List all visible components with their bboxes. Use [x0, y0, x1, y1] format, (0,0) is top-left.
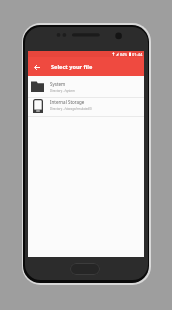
button[interactable]: [28, 97, 144, 116]
staticText: Select your file: [51, 63, 93, 71]
staticText: Directory - /storage/emulated/0: [50, 107, 92, 111]
staticText: 84%: [120, 52, 128, 57]
staticText: Directory - /system: [50, 89, 75, 93]
button[interactable]: Back: [28, 57, 42, 76]
staticText: System: [50, 81, 66, 87]
staticText: 01:44: [132, 52, 143, 57]
staticText: Internal Storage: [50, 99, 85, 105]
button[interactable]: Select your file: [51, 57, 93, 76]
button[interactable]: [28, 75, 144, 97]
